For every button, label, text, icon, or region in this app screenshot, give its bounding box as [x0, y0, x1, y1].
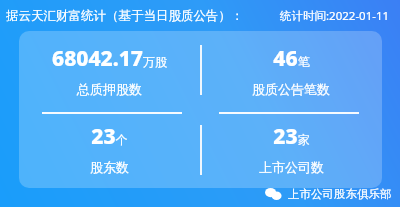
- button[interactable]: 46笔: [252, 44, 330, 97]
- staticText: 股东数: [90, 159, 129, 175]
- button[interactable]: WeChat 上市公司股东俱乐部: [265, 185, 392, 203]
- staticText: 股质公告笔数: [252, 81, 330, 97]
- staticText: 据云天汇财富统计（基于当日股质公告）：: [6, 8, 244, 24]
- button[interactable]: 23个: [90, 122, 129, 175]
- staticText: 总质押股数: [77, 81, 142, 97]
- staticText: 23个: [91, 122, 128, 151]
- staticText: 46笔: [273, 44, 310, 73]
- staticText: 23家: [273, 122, 310, 151]
- staticText: 上市公司数: [259, 159, 324, 175]
- staticText: 68042.17万股: [52, 44, 167, 73]
- button[interactable]: 23家: [259, 122, 324, 175]
- button[interactable]: 68042.17万股: [52, 44, 167, 97]
- staticText: 上市公司股东俱乐部: [288, 187, 392, 201]
- staticText: 统计时间:2022-01-11: [280, 8, 390, 24]
